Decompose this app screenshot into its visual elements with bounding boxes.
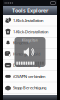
staticText: 1-Klick-Deinstallation <box>13 29 48 34</box>
staticText: Stopp Berechtigung <box>13 85 46 90</box>
staticText: Klingelton <box>22 39 38 42</box>
staticText: 1-Klick-Installation <box>13 18 43 23</box>
staticText: Tools Explorer <box>12 7 48 14</box>
button[interactable]: Hintergrundbild <box>3 49 57 60</box>
staticText: Hintergrundbild <box>13 51 40 57</box>
button[interactable]: 1-Klick-Installation <box>3 15 57 26</box>
staticText: Datensicherung <box>13 62 40 68</box>
button[interactable]: iOS/VPN verbinden <box>3 71 57 82</box>
button[interactable]: Stopp Berechtigung <box>3 82 57 93</box>
staticText: iOS/VPN verbinden <box>13 74 45 79</box>
staticText: Klingelton <box>13 40 29 45</box>
button[interactable]: Klingelton <box>3 37 57 49</box>
button[interactable]: 1-Klick-Deinstallation <box>3 26 57 37</box>
button[interactable]: Datensicherung <box>3 60 57 71</box>
